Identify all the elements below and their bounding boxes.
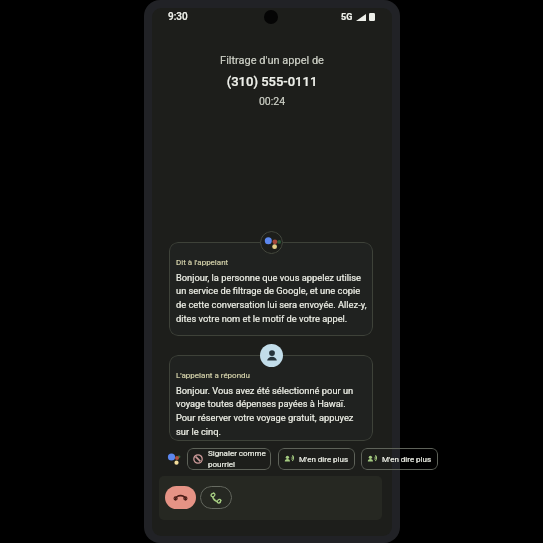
staticText: Bonjour. Vous avez été sélectionné pour … [176,385,364,437]
staticText: 5G [341,12,353,23]
button[interactable]: Signaler comme pourriel [187,448,271,470]
staticText: Filtrage d'un appel de [152,54,392,67]
staticText: 9:30 [168,11,188,23]
staticText: Dit à l'appelant [176,258,229,267]
button[interactable]: L'appelant a répondu [169,355,373,441]
staticText: L'appelant a répondu [176,371,251,380]
staticText: M'en dire plus [299,455,349,464]
button[interactable]: Répondre [200,486,232,509]
staticText: Bonjour, la personne que vous appelez ut… [176,272,369,324]
staticText: M'en dire plus [382,455,432,464]
staticText: (310) 555-0111 [152,74,392,89]
button[interactable]: Dit à l'appelant [169,242,373,336]
button[interactable]: Raccrocher [165,486,196,509]
staticText: Signaler comme pourriel [208,449,266,469]
button[interactable]: M'en dire plus [361,448,438,470]
button[interactable]: M'en dire plus [278,448,355,470]
staticText: 00:24 [152,95,392,107]
